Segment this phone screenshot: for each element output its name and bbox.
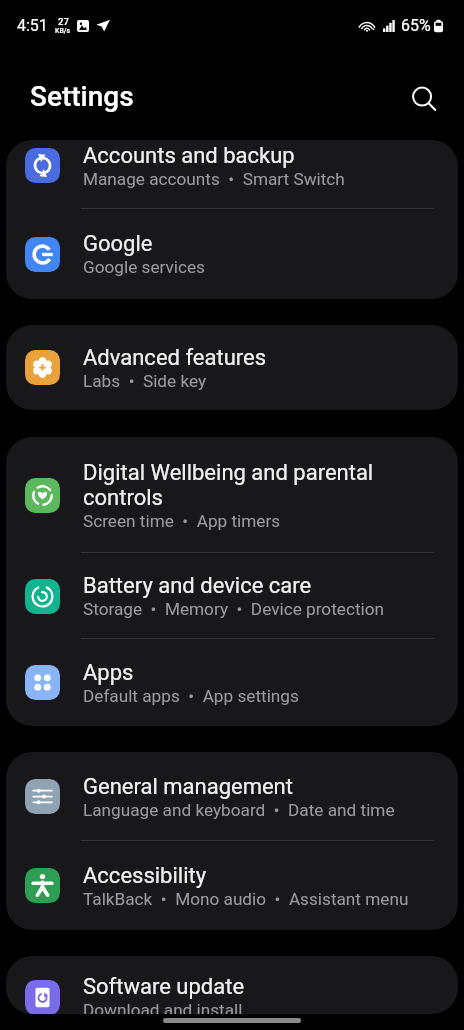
staticText: Settings bbox=[30, 80, 134, 113]
button[interactable]: Software update bbox=[6, 956, 458, 1014]
staticText: Screen time • App timers bbox=[83, 511, 281, 531]
staticText: TalkBack • Mono audio • Assistant menu bbox=[83, 889, 409, 909]
staticText: Accessibility bbox=[83, 863, 207, 889]
staticText: Apps bbox=[83, 660, 134, 686]
staticText: Battery and device care bbox=[83, 573, 312, 599]
button[interactable]: Accessibility bbox=[6, 841, 458, 930]
staticText: 4:51 bbox=[17, 16, 48, 35]
staticText: Download and install bbox=[83, 1000, 243, 1014]
button[interactable]: Accounts and backup bbox=[6, 140, 458, 209]
button[interactable]: Search bbox=[402, 77, 446, 121]
staticText: Storage • Memory • Device protection bbox=[83, 599, 384, 619]
staticText: Advanced features bbox=[83, 345, 267, 371]
staticText: KB/s bbox=[55, 27, 71, 35]
staticText: Software update bbox=[83, 974, 245, 1000]
staticText: Google services bbox=[83, 257, 205, 277]
staticText: Google bbox=[83, 231, 153, 257]
button[interactable]: Battery and device care bbox=[6, 553, 458, 639]
button[interactable]: Google bbox=[6, 209, 458, 299]
staticText: 65% bbox=[401, 16, 431, 35]
staticText: Default apps • App settings bbox=[83, 686, 299, 706]
button[interactable]: Digital Wellbeing and parental controls bbox=[6, 437, 458, 553]
staticText: Language and keyboard • Date and time bbox=[83, 800, 395, 820]
button[interactable]: Advanced features bbox=[6, 325, 458, 410]
button[interactable]: General management bbox=[6, 752, 458, 841]
staticText: Accounts and backup bbox=[83, 143, 295, 169]
staticText: Digital Wellbeing and parental controls bbox=[83, 460, 374, 511]
staticText: Labs • Side key bbox=[83, 371, 207, 391]
staticText: Manage accounts • Smart Switch bbox=[83, 169, 345, 189]
staticText: 27 bbox=[58, 16, 69, 27]
button[interactable]: Apps bbox=[6, 639, 458, 726]
staticText: General management bbox=[83, 774, 293, 800]
